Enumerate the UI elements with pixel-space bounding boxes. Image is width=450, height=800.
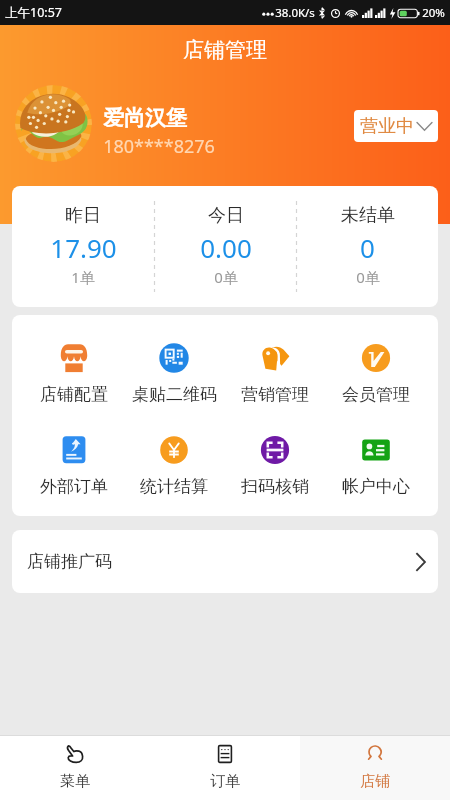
staticText: 1单 bbox=[71, 267, 95, 287]
staticText: 桌贴二维码 bbox=[132, 384, 217, 405]
button[interactable]: 帐户中心 bbox=[325, 435, 426, 497]
staticText: 店铺 bbox=[360, 772, 390, 791]
staticText: 今日 bbox=[208, 204, 244, 227]
button[interactable]: 扫码核销 bbox=[224, 435, 325, 497]
staticText: 17.90 bbox=[50, 230, 117, 265]
staticText: 0单 bbox=[214, 267, 238, 287]
staticText: 店铺管理 bbox=[183, 37, 267, 63]
staticText: 昨日 bbox=[65, 204, 101, 227]
button[interactable]: Menu bbox=[0, 736, 150, 800]
staticText: 180****8276 bbox=[103, 134, 215, 159]
button[interactable]: 桌贴二维码 bbox=[124, 343, 224, 405]
button[interactable]: 店铺配置 bbox=[24, 343, 124, 405]
staticText: 店铺推广码 bbox=[27, 551, 112, 572]
staticText: 0 bbox=[360, 230, 375, 265]
button[interactable]: 店铺推广码 bbox=[12, 530, 438, 593]
staticText: 营业中 bbox=[360, 115, 414, 138]
staticText: 菜单 bbox=[60, 772, 90, 791]
staticText: 扫码核销 bbox=[241, 476, 309, 497]
button[interactable]: 会员管理 bbox=[325, 343, 426, 405]
button[interactable]: 营销管理 bbox=[224, 343, 325, 405]
staticText: 统计结算 bbox=[140, 476, 208, 497]
staticText: 帐户中心 bbox=[342, 476, 410, 497]
button[interactable]: 统计结算 bbox=[124, 435, 224, 497]
staticText: 店铺配置 bbox=[40, 384, 108, 405]
staticText: 未结单 bbox=[341, 204, 395, 227]
staticText: 0.00 bbox=[200, 230, 252, 265]
staticText: 营销管理 bbox=[241, 384, 309, 405]
staticText: 20% bbox=[422, 5, 445, 21]
staticText: 上午10:57 bbox=[5, 4, 62, 21]
button[interactable]: 今日 bbox=[155, 186, 296, 307]
button[interactable]: 昨日 bbox=[12, 186, 154, 307]
staticText: 外部订单 bbox=[40, 476, 108, 497]
button[interactable]: Orders bbox=[150, 736, 300, 800]
button[interactable]: 未结单 bbox=[297, 186, 438, 307]
staticText: 爱尚汉堡 bbox=[103, 105, 187, 131]
button[interactable]: Shop bbox=[300, 736, 450, 800]
staticText: 0单 bbox=[356, 267, 380, 287]
staticText: 订单 bbox=[210, 772, 240, 791]
button[interactable]: 外部订单 bbox=[24, 435, 124, 497]
staticText: 38.0K/s bbox=[275, 5, 315, 21]
staticText: 会员管理 bbox=[342, 384, 410, 405]
button[interactable]: 营业中 bbox=[354, 110, 438, 142]
